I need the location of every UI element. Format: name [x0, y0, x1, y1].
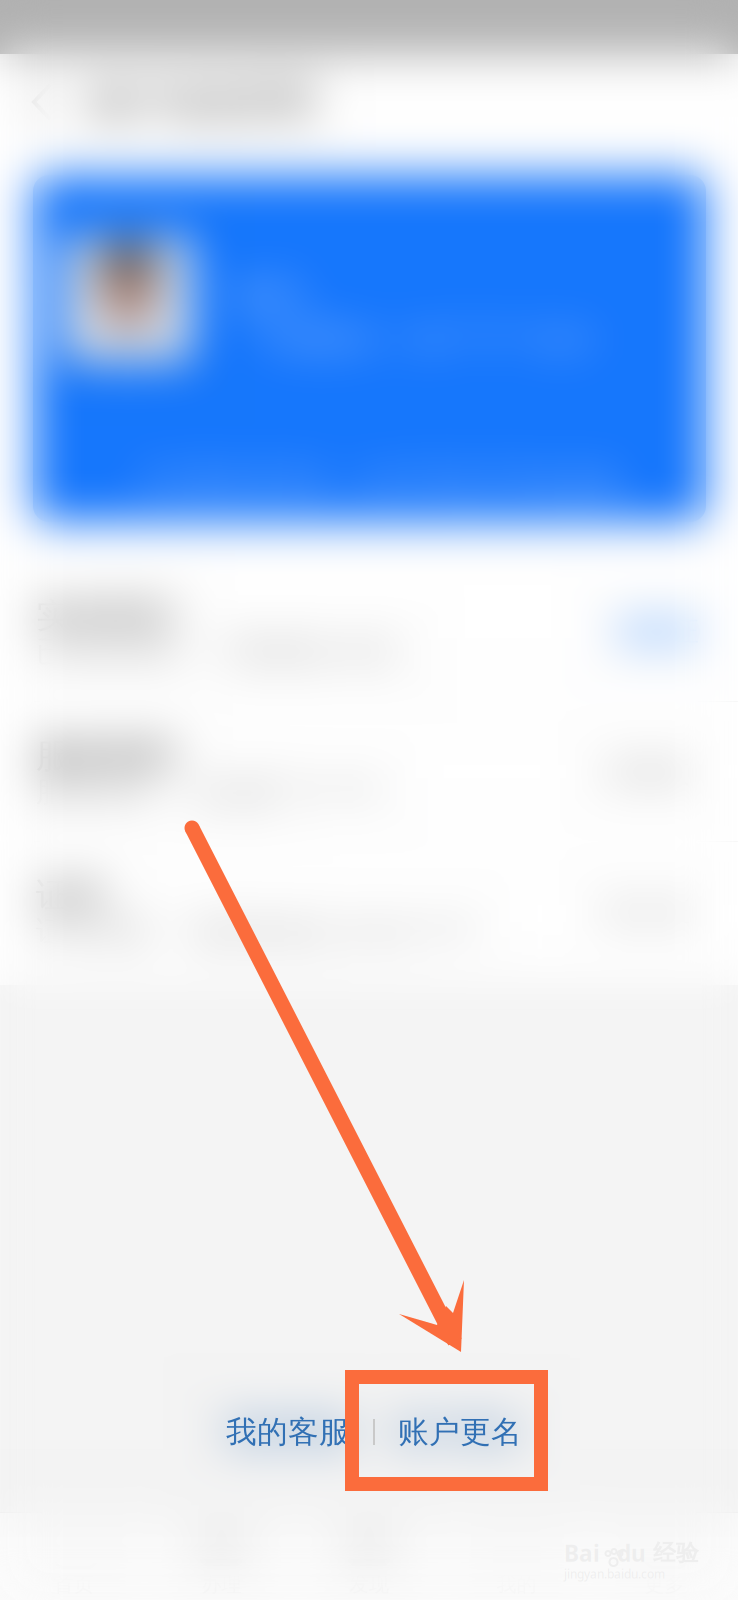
button[interactable]: 账户更名: [398, 1413, 522, 1451]
button[interactable]: 我的客服: [226, 1413, 350, 1451]
staticText: 李**: [235, 273, 308, 319]
staticText: 账户更名: [398, 1413, 522, 1451]
button[interactable]: 返回: [24, 71, 70, 133]
staticText: 账户更名: [398, 1413, 522, 1451]
button[interactable]: 证件: [0, 842, 738, 981]
staticText: 服务密码: [36, 734, 176, 777]
staticText: 证件类型: [36, 913, 152, 949]
staticText: 已完成实名登记，账户状态正常: [133, 463, 539, 499]
button[interactable]: 服务密码: [0, 702, 738, 841]
staticText: 已实名登记: [36, 633, 181, 669]
staticText: Bai: [564, 1538, 600, 1568]
button[interactable]: 账户更名: [398, 1413, 522, 1451]
staticText: 我的客服: [226, 1413, 350, 1451]
staticText: 实名登记: [36, 594, 176, 637]
staticText: jingyan.baidu.com: [564, 1566, 665, 1582]
staticText: du: [617, 1538, 646, 1568]
staticText: 服务密码: [36, 773, 152, 809]
staticText: 经验: [646, 1539, 699, 1567]
staticText: 去认证: [615, 614, 699, 649]
staticText: 中国移动 138 **** 6621: [255, 318, 605, 359]
button[interactable]: 我的客服: [226, 1413, 350, 1451]
staticText: 我的客服: [226, 1413, 350, 1451]
staticText: 居民身份证 3301****: [190, 912, 475, 951]
staticText: 证件: [36, 874, 106, 917]
staticText: 去查看 ›: [533, 463, 637, 502]
button[interactable]: 更多: [590, 1513, 738, 1600]
button[interactable]: 实名登记: [0, 562, 738, 701]
staticText: 账户信息管理: [92, 79, 314, 125]
